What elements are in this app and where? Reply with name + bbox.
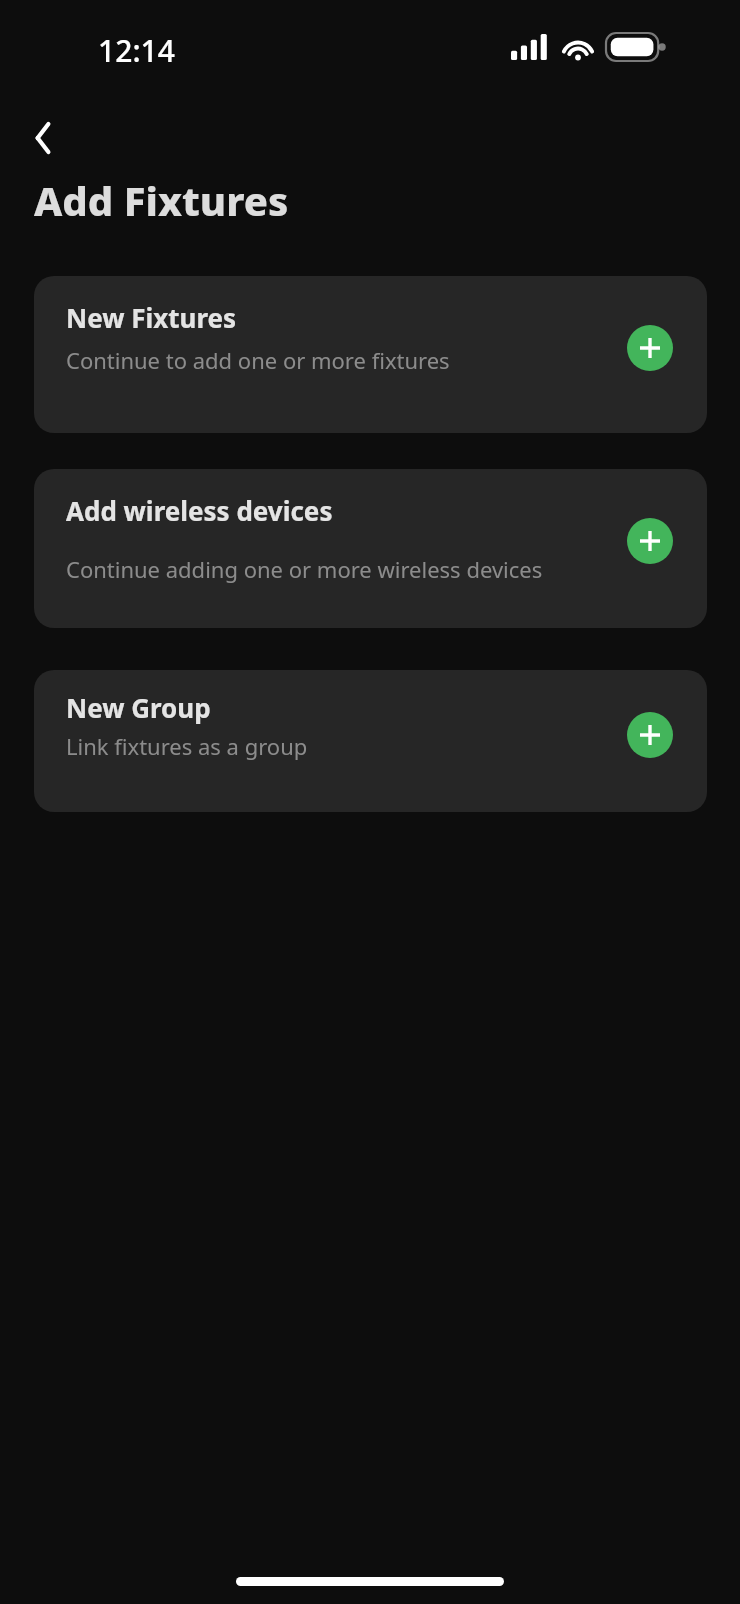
staticText: Link fixtures as a group <box>66 731 308 761</box>
button[interactable]: Add New Group <box>627 712 673 758</box>
button[interactable]: Add New Fixtures <box>627 325 673 371</box>
staticText: New Fixtures <box>66 300 237 335</box>
staticText: Add wireless devices <box>66 493 333 528</box>
staticText: Continue to add one or more fixtures <box>66 345 450 375</box>
staticText: New Group <box>66 690 211 725</box>
button[interactable]: Add Add wireless devices <box>627 518 673 564</box>
button[interactable]: New Fixtures <box>34 276 707 433</box>
staticText: 12:14 <box>98 30 175 71</box>
staticText: Continue adding one or more wireless dev… <box>66 554 543 584</box>
button[interactable]: New Group <box>34 670 707 812</box>
button[interactable]: Back <box>20 114 68 162</box>
staticText: Add Fixtures <box>34 173 289 227</box>
button[interactable]: Add wireless devices <box>34 469 707 628</box>
